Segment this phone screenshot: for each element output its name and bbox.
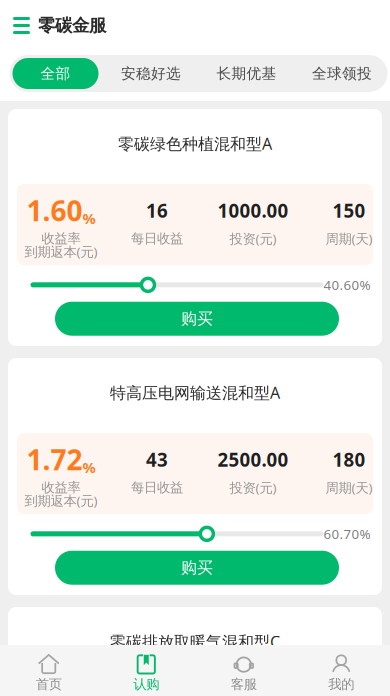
button[interactable]: 我的 — [292, 645, 390, 696]
staticText: 认购 — [133, 676, 159, 692]
button[interactable]: 购买 — [55, 551, 339, 585]
staticText: 全球领投 — [312, 64, 372, 82]
staticText: 1000.00 — [217, 198, 288, 223]
staticText: 零碳金服 — [38, 15, 106, 36]
staticText: 零碳绿色种植混和型A — [118, 133, 272, 154]
staticText: 收益率 — [41, 230, 80, 247]
staticText: % — [82, 458, 95, 477]
staticText: 购买 — [181, 558, 213, 578]
staticText: 客服 — [231, 676, 257, 692]
staticText: 周期(天) — [325, 230, 372, 247]
button[interactable]: 全部 — [12, 58, 98, 89]
staticText: 每日收益 — [131, 479, 183, 496]
staticText: 首页 — [36, 676, 62, 692]
staticText: % — [82, 209, 95, 228]
staticText: 我的 — [328, 676, 354, 692]
staticText: 安稳好选 — [121, 64, 181, 82]
staticText: 长期优基 — [216, 64, 276, 82]
staticText: 40.60% — [323, 276, 370, 294]
staticText: 全部 — [40, 64, 70, 82]
staticText: 1.60 — [26, 192, 82, 229]
button[interactable]: 全球领投 — [299, 58, 385, 89]
staticText: 1.72 — [26, 441, 82, 478]
staticText: 零碳排放取暖气混和型C — [110, 631, 280, 652]
staticText: 43 — [146, 447, 168, 472]
staticText: 特高压电网输送混和型A — [110, 382, 280, 403]
staticText: 1.85 — [26, 690, 82, 696]
staticText: 180 — [332, 447, 365, 472]
button[interactable]: Menu — [13, 12, 30, 38]
button[interactable]: 安稳好选 — [108, 58, 194, 89]
staticText: 投资(元) — [229, 230, 276, 247]
staticText: 周期(天) — [325, 479, 372, 496]
button[interactable]: 认购 — [97, 645, 195, 696]
staticText: 到期返本(元) — [24, 243, 97, 260]
staticText: 购买 — [181, 309, 213, 329]
staticText: 收益率 — [41, 479, 80, 496]
staticText: 到期返本(元) — [24, 492, 97, 509]
staticText: 60.70% — [323, 525, 370, 543]
staticText: 2500.00 — [217, 447, 288, 472]
button[interactable]: 客服 — [195, 645, 292, 696]
staticText: 150 — [332, 198, 365, 223]
button[interactable]: 长期优基 — [203, 58, 289, 89]
staticText: 每日收益 — [131, 230, 183, 247]
button[interactable]: 首页 — [0, 645, 97, 696]
staticText: 投资(元) — [229, 479, 276, 496]
staticText: 16 — [146, 198, 168, 223]
button[interactable]: 购买 — [55, 302, 339, 336]
